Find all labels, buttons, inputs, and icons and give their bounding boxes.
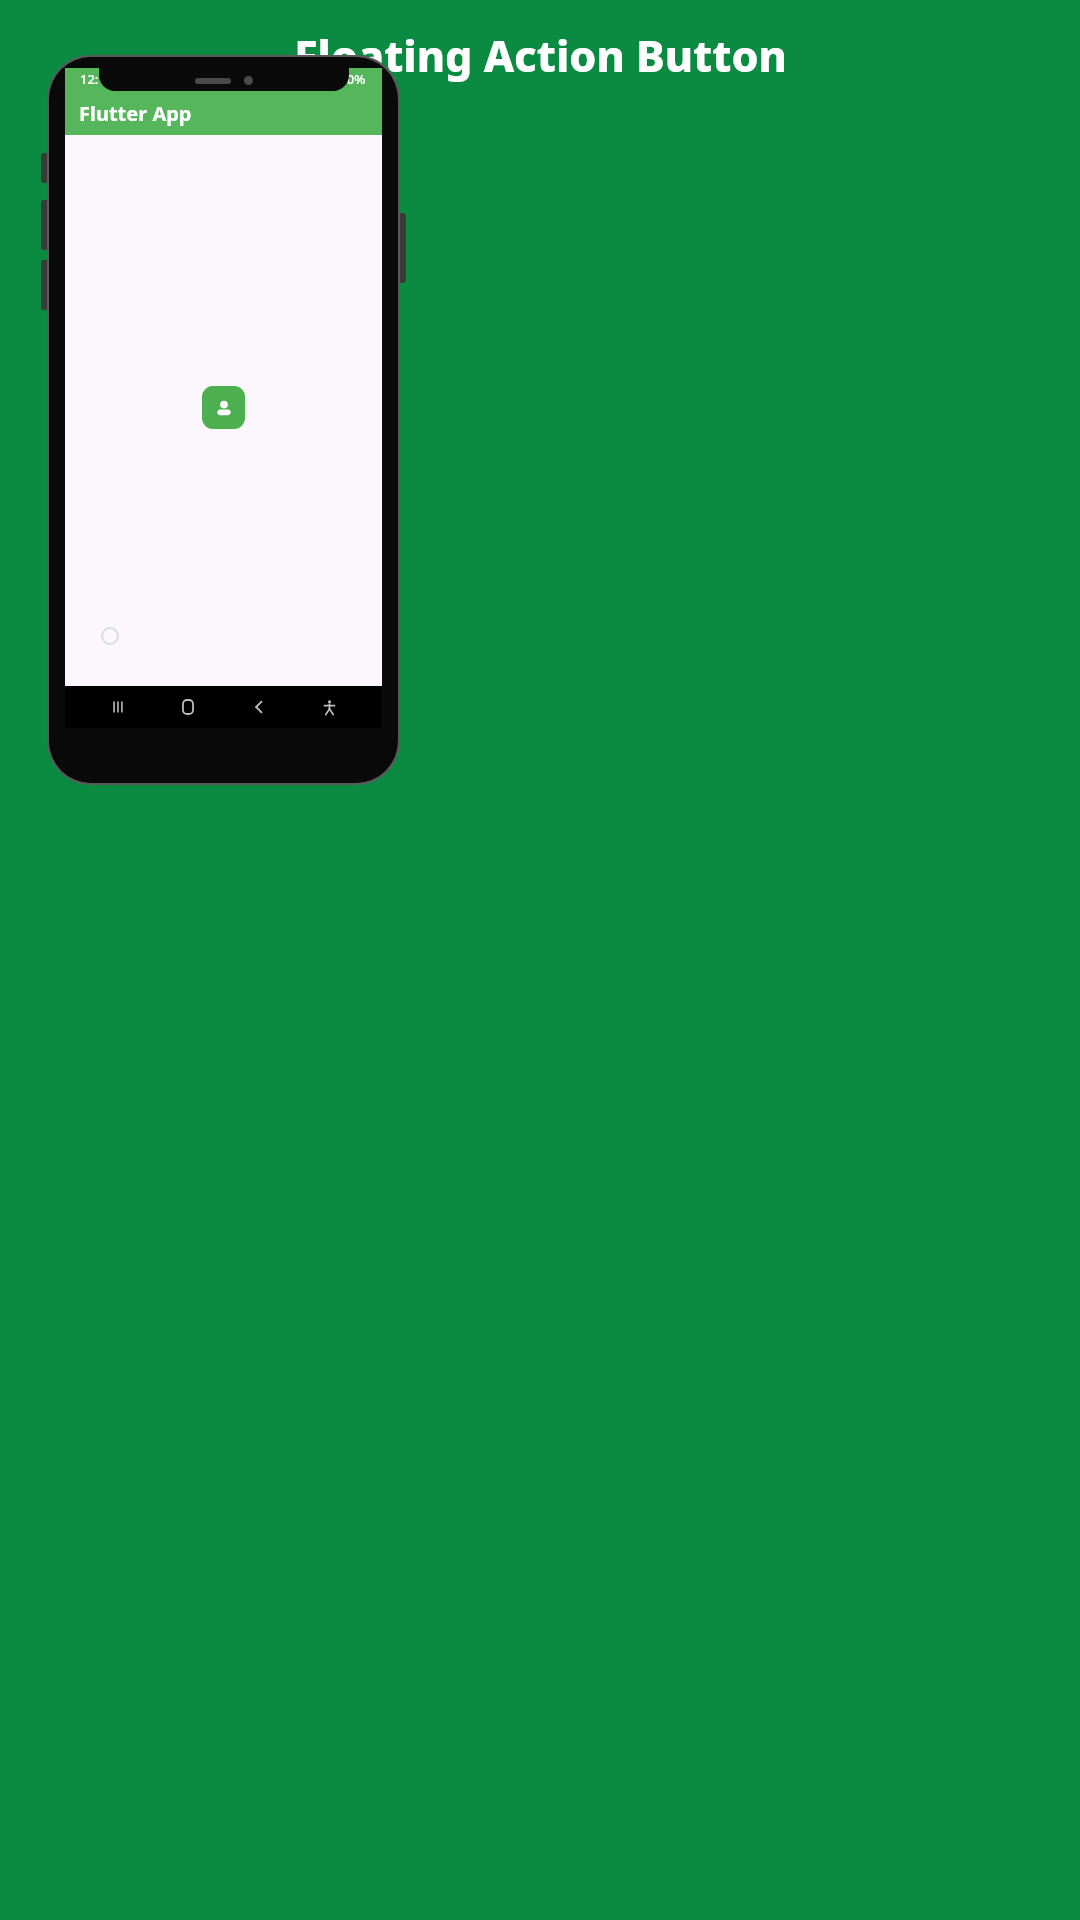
staticText: Flutter App xyxy=(79,100,192,127)
button[interactable]: Recents xyxy=(100,689,136,725)
button[interactable]: Back xyxy=(241,689,277,725)
button[interactable]: Add person xyxy=(202,386,245,429)
staticText: 12:11 xyxy=(80,70,114,88)
staticText: Floating Action Button xyxy=(294,26,787,85)
button[interactable]: Home xyxy=(170,689,206,725)
staticText: 100% xyxy=(332,70,366,88)
button[interactable]: Accessibility xyxy=(311,689,347,725)
